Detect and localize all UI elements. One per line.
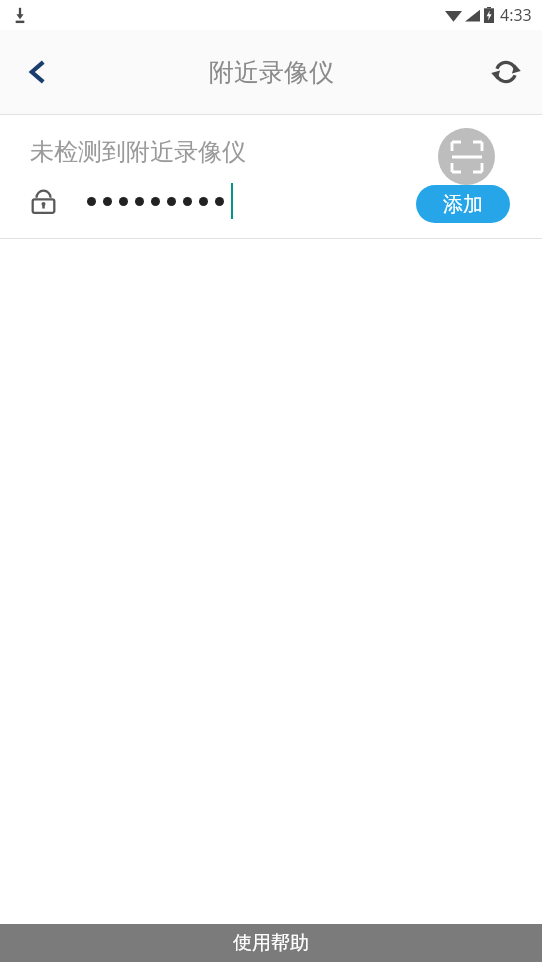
staticText: 附近录像仪 [209,57,334,88]
staticText: 未检测到附近录像仪 [30,137,246,167]
staticText: 使用帮助 [233,931,309,955]
button[interactable]: Scan QR code [438,128,495,185]
button[interactable]: Refresh [470,30,542,114]
button[interactable]: 添加 [416,185,510,223]
button[interactable]: 使用帮助 [0,924,542,962]
staticText: 添加 [443,192,483,217]
button[interactable]: Back [0,30,76,114]
staticText: 4:33 [500,4,532,26]
